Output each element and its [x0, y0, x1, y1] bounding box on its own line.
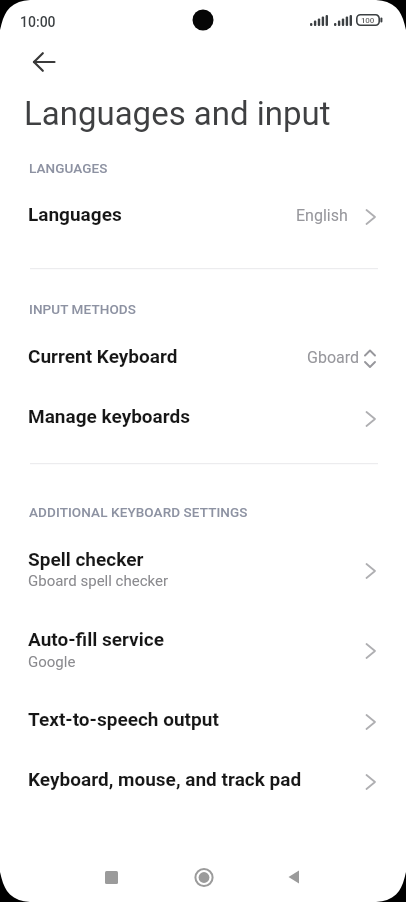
button[interactable]: [20, 44, 68, 80]
staticText: 100: [361, 16, 375, 25]
staticText: Languages: [28, 203, 122, 225]
button[interactable]: Keyboard, mouse, and track pad: [0, 755, 406, 810]
staticText: Current Keyboard: [28, 345, 178, 367]
button[interactable]: [86, 852, 138, 902]
staticText: Text-to-speech output: [28, 708, 219, 730]
staticText: Auto-fill service: [28, 628, 164, 650]
button[interactable]: Spell checker: [0, 540, 406, 602]
staticText: Keyboard, mouse, and track pad: [28, 768, 302, 790]
staticText: Gboard: [307, 348, 360, 367]
staticText: LANGUAGES: [29, 160, 108, 176]
button[interactable]: [268, 852, 320, 902]
button[interactable]: Manage keyboards: [0, 392, 406, 447]
staticText: Google: [28, 653, 76, 671]
staticText: 10:00: [20, 14, 56, 30]
staticText: ADDITIONAL KEYBOARD SETTINGS: [29, 504, 248, 520]
staticText: INPUT METHODS: [29, 301, 136, 317]
staticText: Spell checker: [28, 548, 144, 570]
button[interactable]: Text-to-speech output: [0, 695, 406, 750]
staticText: Manage keyboards: [28, 405, 191, 427]
button[interactable]: [178, 852, 230, 902]
button[interactable]: Auto-fill service: [0, 620, 406, 682]
button[interactable]: Languages: [0, 190, 406, 245]
staticText: English: [296, 206, 348, 225]
staticText: Gboard spell checker: [28, 572, 169, 590]
button[interactable]: Current Keyboard: [0, 332, 406, 387]
staticText: Languages and input: [24, 94, 331, 133]
